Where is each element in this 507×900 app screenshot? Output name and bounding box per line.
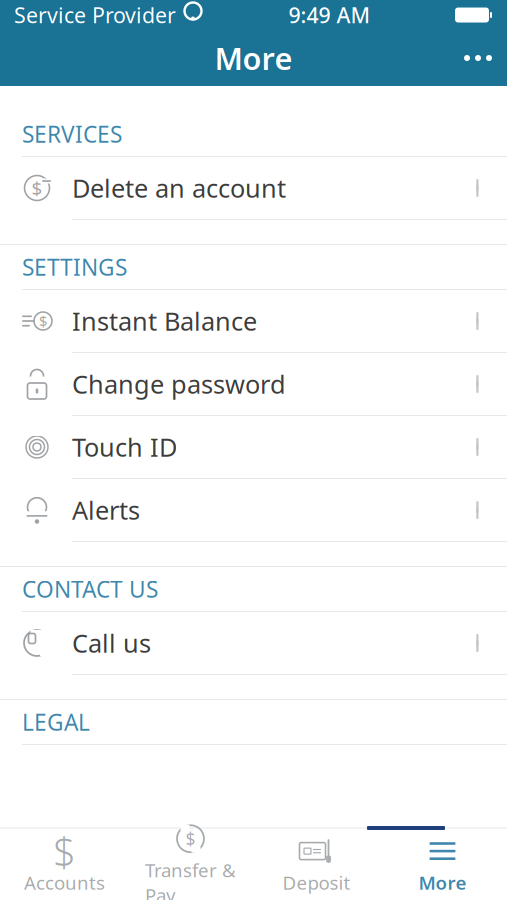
staticText: Touch ID	[72, 430, 177, 464]
staticText: Alerts	[72, 493, 140, 527]
staticText: More	[418, 870, 466, 895]
staticText: Deposit	[282, 870, 350, 895]
staticText: Accounts	[24, 870, 105, 895]
button[interactable]: Deposit	[253, 830, 379, 900]
button[interactable]: $	[127, 830, 253, 900]
staticText: Change password	[72, 367, 286, 401]
button[interactable]: Call us	[0, 612, 507, 674]
staticText: $	[185, 827, 195, 850]
button[interactable]: Change password	[0, 353, 507, 415]
staticText: SERVICES	[22, 119, 122, 149]
staticText: Transfer & Pay	[145, 858, 236, 900]
button[interactable]: Alerts	[0, 479, 507, 541]
staticText: CONTACT US	[22, 574, 158, 604]
button[interactable]: $	[1, 830, 127, 900]
button[interactable]: $	[0, 157, 507, 219]
staticText: $	[39, 311, 47, 331]
staticText: Service Provider	[14, 1, 176, 29]
staticText: SETTINGS	[22, 252, 127, 282]
staticText: $	[53, 824, 76, 878]
staticText: Call us	[72, 626, 151, 660]
staticText: More	[214, 38, 292, 78]
button[interactable]: More options	[449, 35, 507, 81]
staticText: $	[31, 176, 42, 200]
button[interactable]: $	[0, 290, 507, 352]
staticText: LEGAL	[22, 707, 90, 737]
button[interactable]: More	[379, 830, 505, 900]
staticText: 9:49 AM	[288, 1, 370, 29]
button[interactable]: Touch ID	[0, 416, 507, 478]
staticText: Delete an account	[72, 171, 286, 205]
staticText: Instant Balance	[72, 304, 257, 338]
